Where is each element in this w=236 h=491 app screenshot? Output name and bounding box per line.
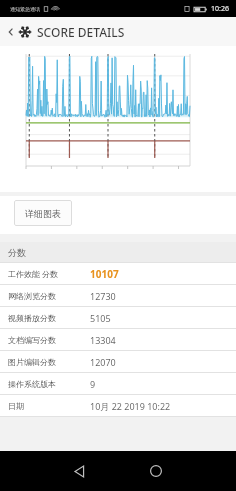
staticText: SCORE DETAILS (37, 24, 125, 40)
staticText: 网络浏览分数 (8, 291, 90, 301)
button[interactable]: Back (63, 454, 97, 488)
button[interactable]: 详细图表 (14, 200, 72, 226)
staticText: 视频播放分数 (8, 313, 90, 323)
button[interactable]: 视频播放分数 (0, 307, 236, 328)
button[interactable]: 文档编写分数 (0, 329, 236, 350)
staticText: 详细图表 (25, 208, 61, 219)
staticText: 图片编辑分数 (8, 357, 90, 367)
button[interactable]: 操作系统版本 (0, 373, 236, 394)
button[interactable]: Back (4, 25, 18, 39)
staticText: 5105 (90, 312, 111, 324)
staticText: 9 (90, 378, 96, 390)
staticText: 日期 (8, 401, 90, 411)
staticText: 文档编写分数 (8, 335, 90, 345)
staticText: 分数 (8, 247, 26, 258)
staticText: 通知紧急通话 (10, 6, 40, 12)
staticText: 操作系统版本 (8, 379, 90, 389)
staticText: 10:26 (211, 4, 229, 14)
button[interactable]: 网络浏览分数 (0, 285, 236, 306)
staticText: 10月 22 2019 10:22 (90, 400, 171, 412)
staticText: 10107 (90, 267, 119, 281)
staticText: 工作效能 分数 (8, 268, 90, 279)
button[interactable]: 图片编辑分数 (0, 351, 236, 372)
button[interactable]: 日期 (0, 395, 236, 416)
button[interactable]: Home (139, 454, 173, 488)
staticText: 13304 (90, 334, 116, 346)
button[interactable]: Back (0, 17, 236, 46)
staticText: 12730 (90, 290, 116, 302)
button[interactable]: 工作效能 分数 (0, 263, 236, 284)
staticText: 12070 (90, 356, 116, 368)
